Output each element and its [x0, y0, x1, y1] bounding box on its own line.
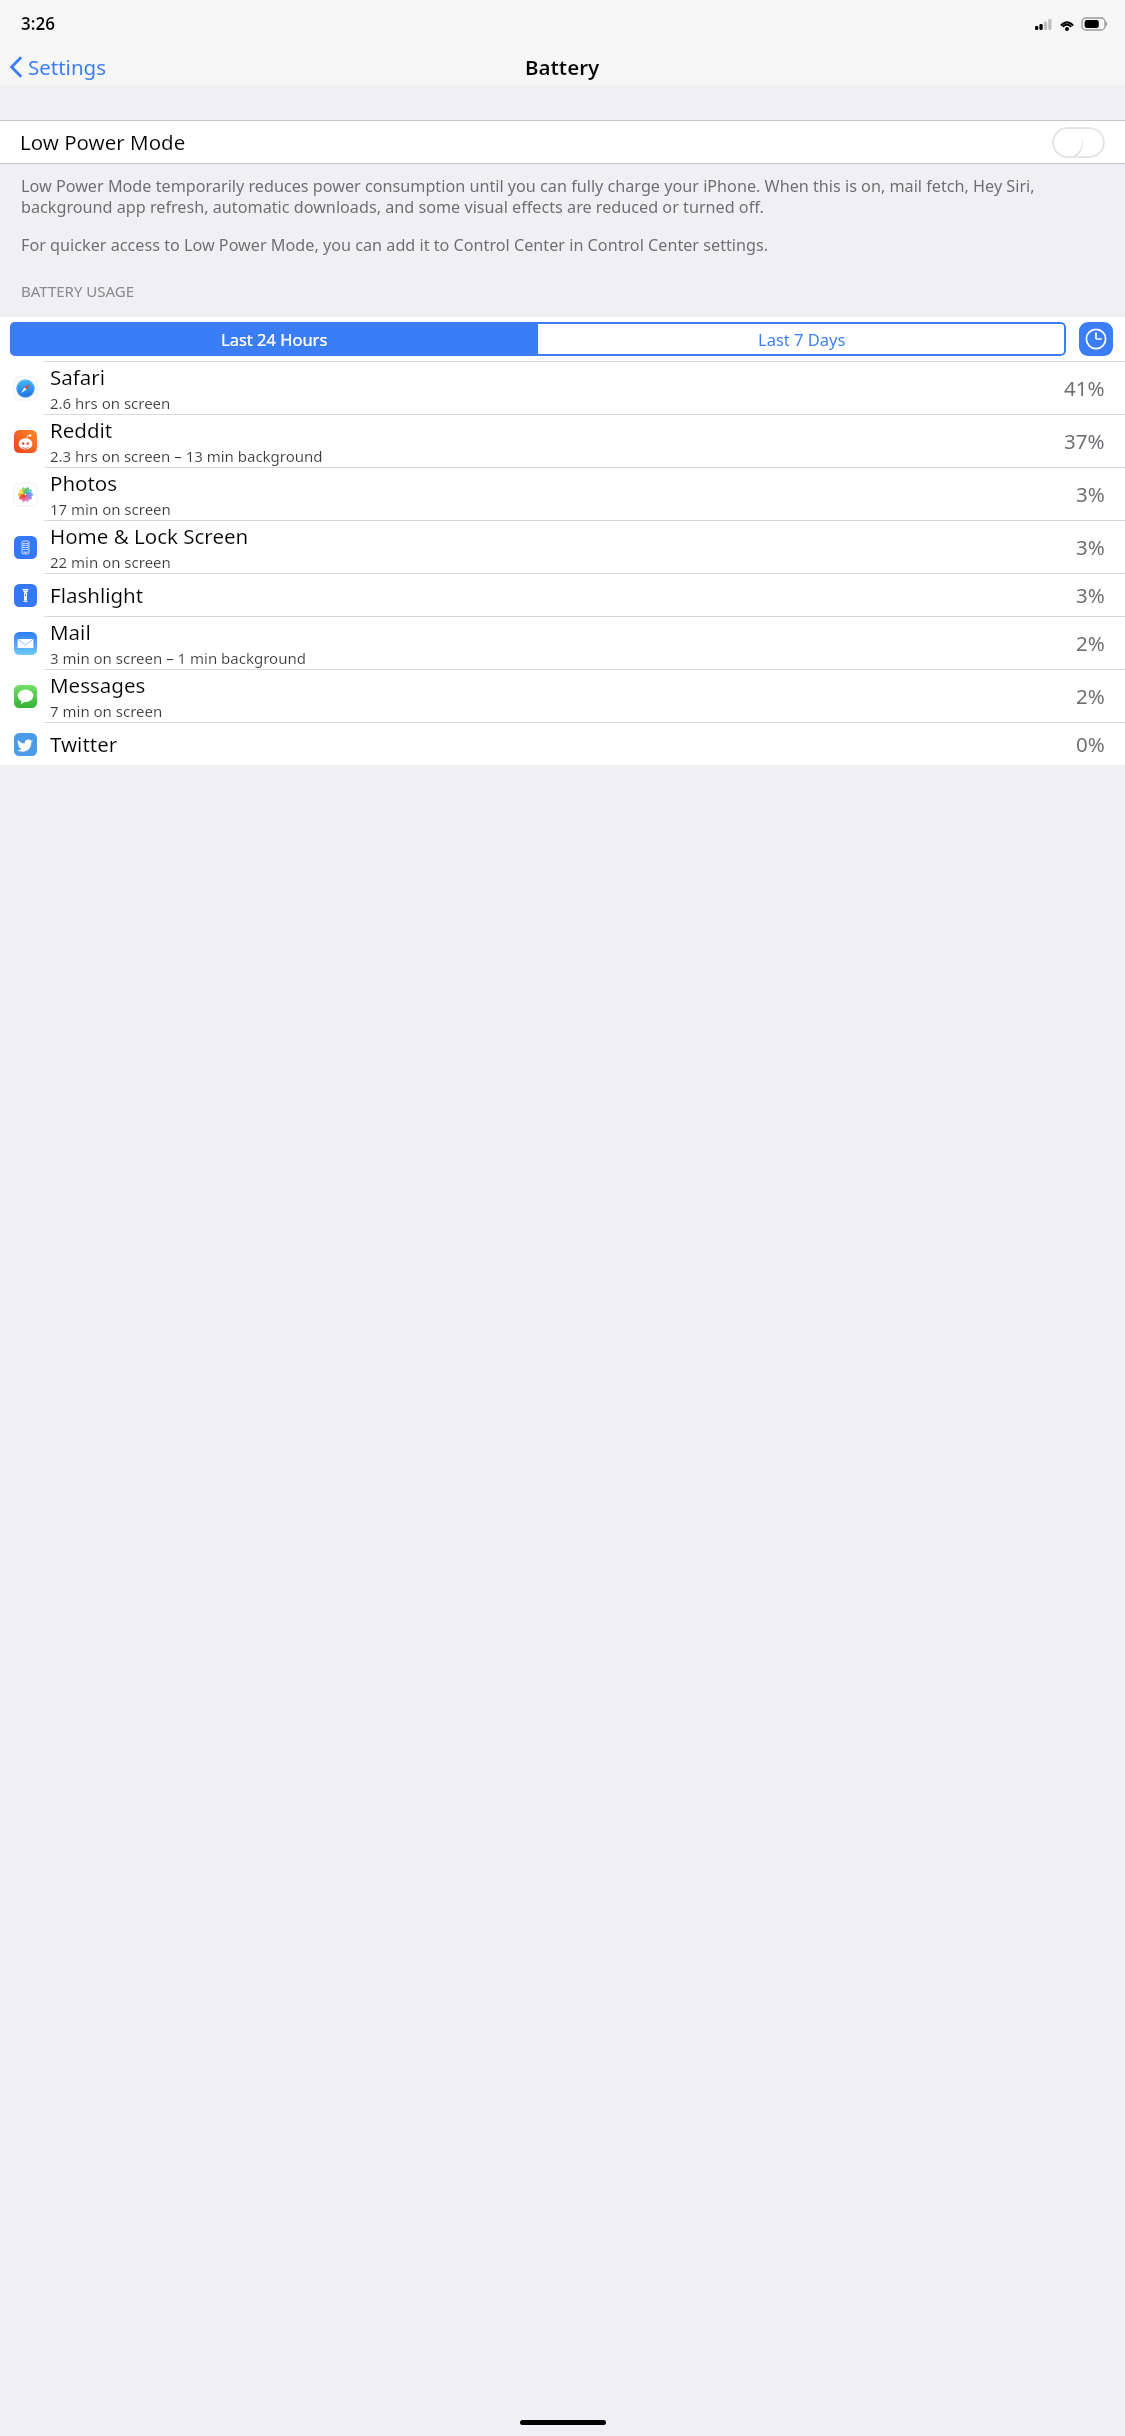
button[interactable]: Last 24 Hours — [10, 322, 538, 356]
staticText: Settings — [28, 53, 107, 81]
button[interactable]: Messages — [0, 670, 1125, 722]
button[interactable]: Low Power Mode toggle, off — [1052, 127, 1105, 158]
staticText: Home & Lock Screen — [50, 522, 249, 550]
staticText: Safari — [50, 363, 106, 391]
button[interactable]: Low Power Mode — [0, 121, 1125, 163]
button[interactable]: Settings — [0, 49, 119, 85]
staticText: BATTERY USAGE — [21, 281, 135, 301]
staticText: 37% — [1064, 427, 1105, 455]
staticText: 3:26 — [21, 12, 55, 35]
staticText: Messages — [50, 671, 146, 699]
staticText: 3% — [1076, 581, 1105, 609]
button[interactable]: Mail — [0, 617, 1125, 669]
button[interactable]: Show battery usage by time — [1079, 322, 1113, 356]
staticText: 2.6 hrs on screen — [50, 393, 171, 413]
button[interactable]: Last 7 Days — [538, 322, 1066, 356]
staticText: 7 min on screen — [50, 701, 163, 721]
staticText: Photos — [50, 469, 118, 497]
staticText: 3% — [1076, 533, 1105, 561]
staticText: 17 min on screen — [50, 499, 171, 519]
button[interactable]: Home & Lock Screen — [0, 521, 1125, 573]
staticText: Reddit — [50, 416, 113, 444]
staticText: Last 24 Hours — [221, 328, 328, 350]
button[interactable]: Flashlight — [0, 574, 1125, 616]
button[interactable]: Safari — [0, 362, 1125, 414]
staticText: 3% — [1076, 480, 1105, 508]
staticText: Twitter — [50, 730, 118, 758]
staticText: 3 min on screen – 1 min background — [50, 648, 306, 668]
staticText: Battery — [525, 53, 600, 81]
staticText: 22 min on screen — [50, 552, 171, 572]
staticText: Mail — [50, 618, 91, 646]
button[interactable]: Photos — [0, 468, 1125, 520]
staticText: 2% — [1076, 629, 1105, 657]
staticText: Low Power Mode temporarily reduces power… — [21, 175, 1103, 218]
staticText: 41% — [1064, 374, 1105, 402]
staticText: 2.3 hrs on screen – 13 min background — [50, 446, 323, 466]
button[interactable]: Twitter — [0, 723, 1125, 765]
staticText: Last 7 Days — [758, 328, 846, 350]
staticText: 0% — [1076, 730, 1105, 758]
staticText: Flashlight — [50, 581, 144, 609]
staticText: 2% — [1076, 682, 1105, 710]
staticText: For quicker access to Low Power Mode, yo… — [21, 234, 769, 256]
button[interactable]: Reddit — [0, 415, 1125, 467]
staticText: Low Power Mode — [20, 128, 1052, 156]
